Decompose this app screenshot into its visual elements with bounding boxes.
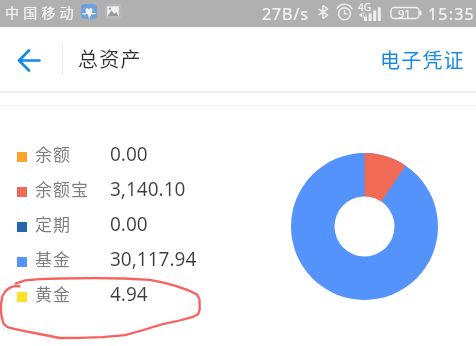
staticText: 电子凭证	[380, 45, 465, 74]
button[interactable]: 余额	[10, 140, 230, 175]
staticText: 27B/s	[262, 3, 309, 25]
staticText: 中国移动	[5, 2, 78, 22]
staticText: 4G	[358, 0, 371, 14]
button[interactable]: 定期	[10, 210, 230, 245]
staticText: 余额	[35, 141, 71, 166]
staticText: 4.94	[110, 281, 148, 307]
button[interactable]: 电子凭证	[380, 45, 465, 74]
button[interactable]: Back	[8, 39, 50, 81]
staticText: 0.00	[110, 211, 148, 237]
staticText: 余额宝	[35, 176, 89, 201]
staticText: 91	[398, 6, 411, 21]
staticText: 15:35	[428, 3, 475, 25]
staticText: 30,117.94	[110, 246, 197, 272]
staticText: 黄金	[35, 281, 71, 306]
button[interactable]: 黄金	[10, 280, 230, 315]
staticText: 0.00	[110, 141, 148, 167]
staticText: 3,140.10	[110, 176, 186, 202]
staticText: 定期	[35, 211, 71, 236]
button[interactable]: 余额宝	[10, 175, 230, 210]
staticText: 基金	[35, 246, 71, 271]
button[interactable]: 基金	[10, 245, 230, 280]
staticText: 总资产	[78, 44, 142, 73]
